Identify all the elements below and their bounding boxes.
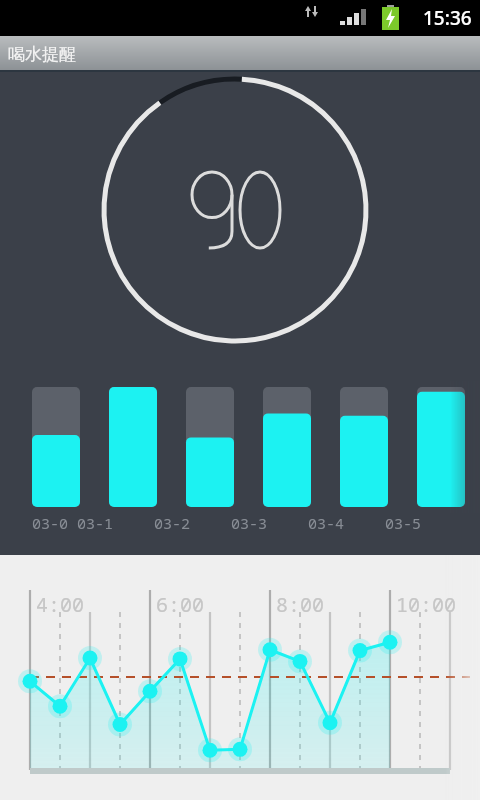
button[interactable]: 喝水提醒 bbox=[0, 36, 480, 72]
staticText: 03-5 bbox=[385, 513, 422, 533]
staticText: 03-2 bbox=[154, 513, 191, 533]
staticText: 4:00 bbox=[36, 591, 84, 618]
staticText: 03-1 bbox=[77, 513, 114, 533]
staticText: 8:00 bbox=[276, 591, 324, 618]
staticText: 6:00 bbox=[156, 591, 204, 618]
staticText: 喝水提醒 bbox=[8, 44, 76, 65]
staticText: 03-0 bbox=[32, 513, 69, 533]
staticText: 10:00 bbox=[396, 591, 456, 618]
button[interactable]: 4:00 bbox=[0, 555, 480, 800]
staticText: 03-4 bbox=[308, 513, 345, 533]
staticText: 15:36 bbox=[423, 5, 472, 31]
staticText: 03-3 bbox=[231, 513, 268, 533]
